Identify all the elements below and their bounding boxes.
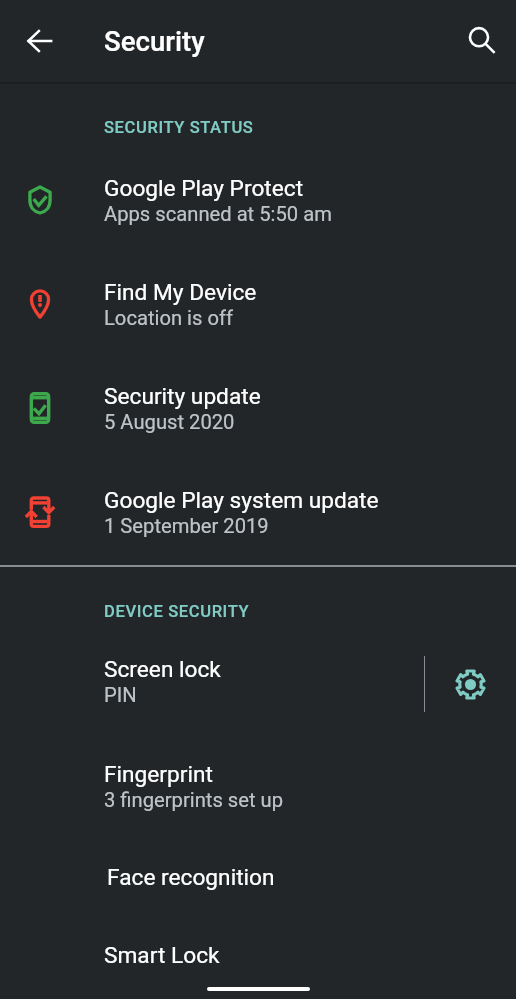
button[interactable]: Search xyxy=(458,17,506,65)
button[interactable]: Screen lock xyxy=(0,629,424,734)
staticText: Google Play Protect xyxy=(104,175,304,202)
staticText: Smart Lock xyxy=(104,942,220,969)
button[interactable]: Fingerprint xyxy=(0,734,516,838)
staticText: PIN xyxy=(104,683,137,707)
button[interactable]: Smart Lock xyxy=(0,916,516,995)
staticText: 5 August 2020 xyxy=(104,410,235,434)
button[interactable]: Find My Device xyxy=(0,252,516,356)
staticText: 3 fingerprints set up xyxy=(104,788,284,812)
staticText: Find My Device xyxy=(104,279,257,306)
staticText: Security xyxy=(104,25,205,57)
button[interactable]: Face recognition xyxy=(0,838,516,916)
staticText: Location is off xyxy=(104,306,234,330)
staticText: SECURITY STATUS xyxy=(104,118,254,137)
button[interactable]: Google Play Protect xyxy=(0,148,516,252)
button[interactable]: Screen lock settings xyxy=(425,629,516,734)
staticText: Fingerprint xyxy=(104,761,213,788)
staticText: Screen lock xyxy=(104,656,221,683)
staticText: Google Play system update xyxy=(104,487,379,514)
staticText: Face recognition xyxy=(107,864,275,891)
button[interactable]: Navigate up xyxy=(16,17,64,65)
staticText: DEVICE SECURITY xyxy=(104,602,250,621)
staticText: Apps scanned at 5:50 am xyxy=(104,202,332,226)
button[interactable]: Security update xyxy=(0,356,516,460)
button[interactable]: Google Play system update xyxy=(0,460,516,564)
staticText: Security update xyxy=(104,383,261,410)
staticText: 1 September 2019 xyxy=(104,514,269,538)
